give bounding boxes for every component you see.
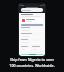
button[interactable]: Continue: [21, 54, 43, 55]
button[interactable]: [21, 24, 43, 26]
staticText: Skip from Nigeria to over: [10, 57, 54, 62]
button[interactable]: [21, 41, 43, 44]
staticText: 100 countries. Worldwide.: [9, 63, 55, 68]
button[interactable]: [21, 35, 43, 38]
button[interactable]: [21, 48, 31, 51]
button[interactable]: [21, 18, 43, 23]
button[interactable]: Search: [21, 8, 43, 12]
button[interactable]: [32, 48, 43, 51]
button[interactable]: [21, 29, 43, 32]
